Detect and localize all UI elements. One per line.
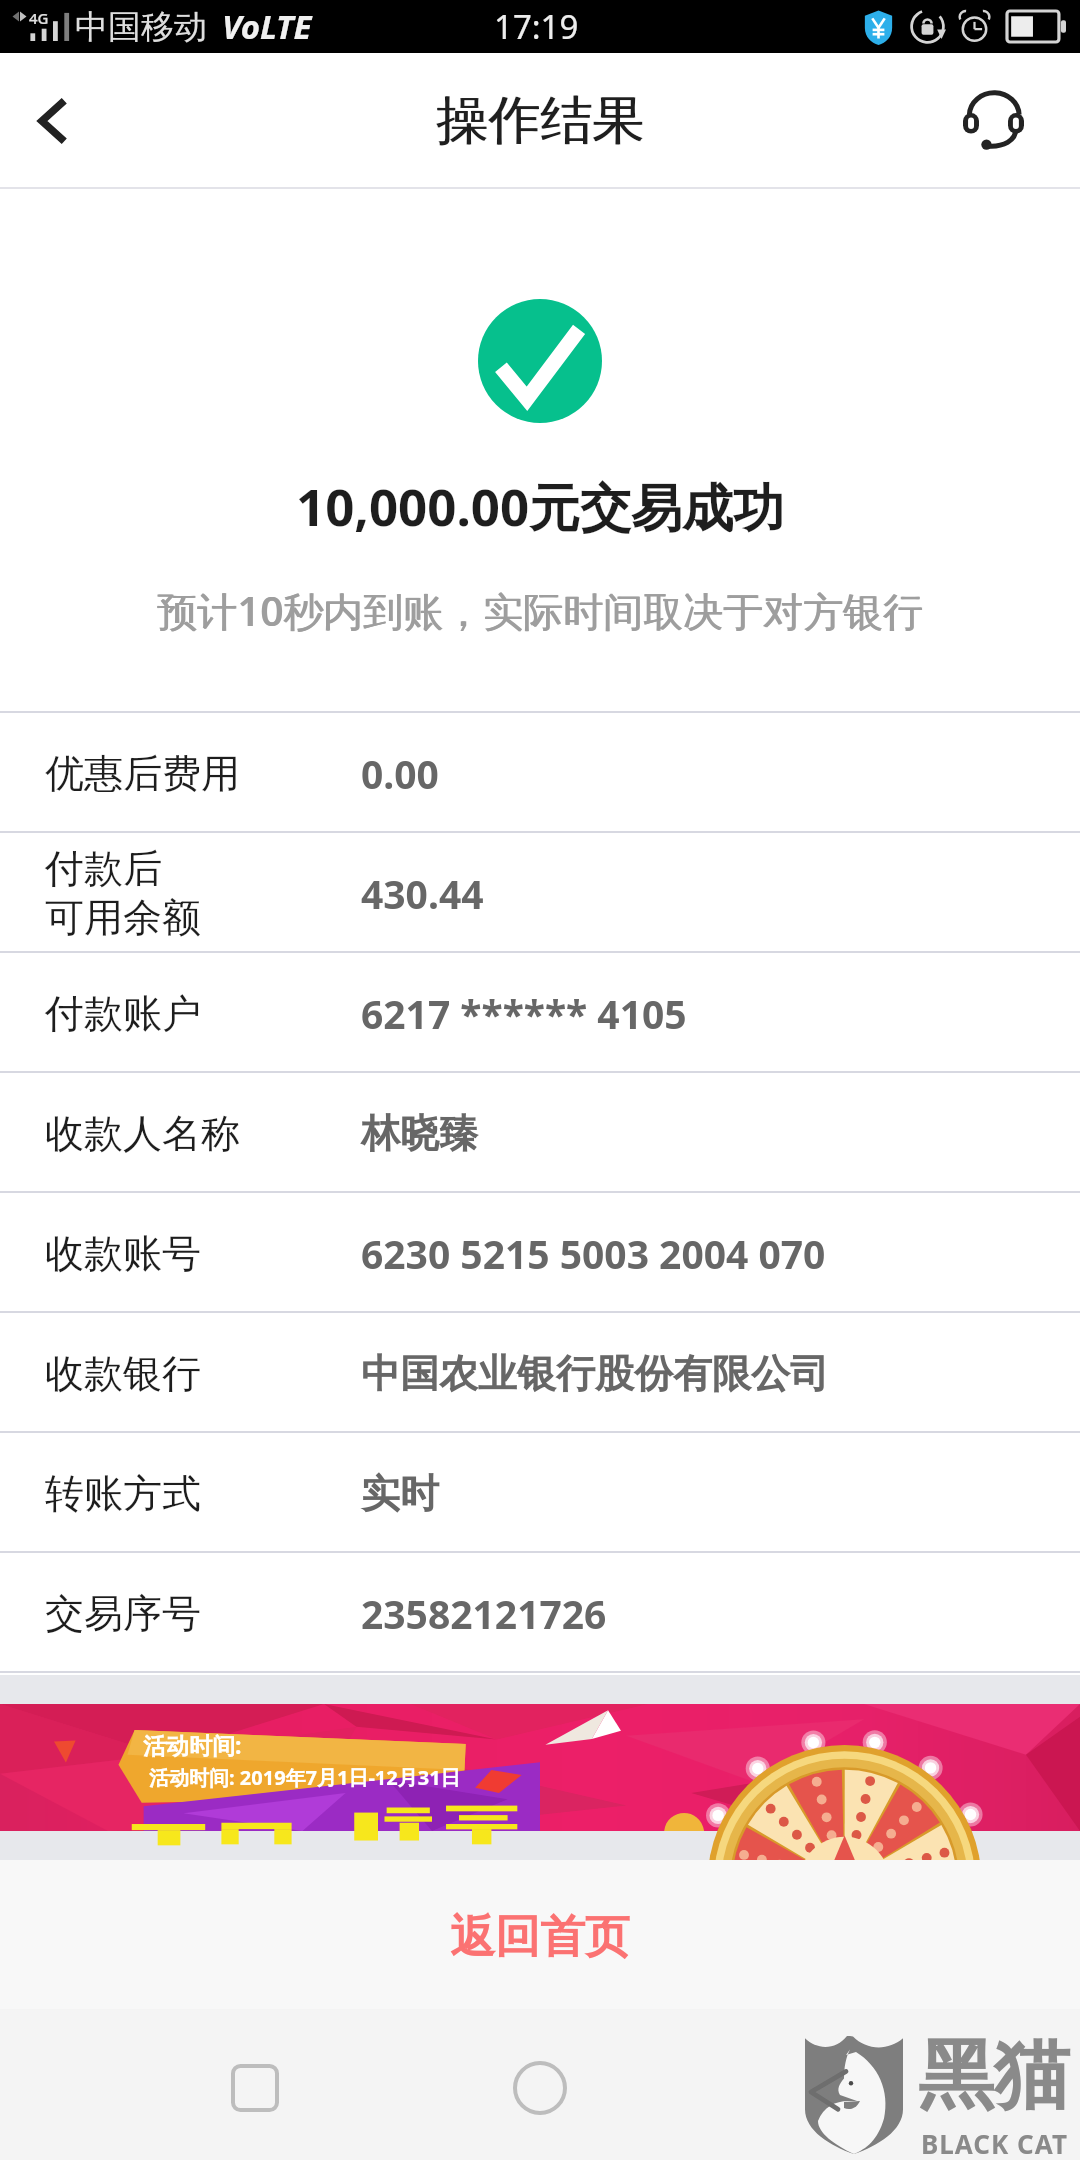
- staticText: 活动时间: 2019年7月1日-12月31日: [149, 1764, 461, 1791]
- staticText: 10,000.00元交易成功: [296, 471, 785, 541]
- button[interactable]: 优惠后费用: [0, 713, 1080, 833]
- staticText: 实时: [361, 1469, 439, 1518]
- staticText: 可用余额: [45, 893, 201, 942]
- button[interactable]: 付款账户: [0, 953, 1080, 1073]
- button[interactable]: 交易序号: [0, 1553, 1080, 1673]
- staticText: 4G: [29, 8, 49, 28]
- button[interactable]: Recents: [211, 2044, 299, 2132]
- button[interactable]: Back: [0, 53, 124, 189]
- staticText: 预计10秒内到账，实际时间取决于对方银行: [158, 583, 924, 638]
- staticText: 中国移动: [75, 6, 207, 48]
- staticText: 优惠后费用: [45, 749, 240, 798]
- button[interactable]: 收款账号: [0, 1193, 1080, 1313]
- staticText: 返回首页: [450, 1909, 630, 1966]
- staticText: 23582121726: [361, 1587, 607, 1640]
- staticText: 6230 5215 5003 2004 070: [361, 1227, 826, 1280]
- staticText: 收款人名称: [45, 1109, 240, 1158]
- staticText: 预计10秒内到账，实际时间取决于对方银行: [157, 583, 923, 638]
- staticText: 收款账号: [45, 1229, 201, 1278]
- staticText: 430.44: [361, 867, 484, 920]
- staticText: 交易序号: [45, 1589, 201, 1638]
- staticText: 付款账户: [45, 989, 201, 1038]
- staticText: 中国农业银行股份有限公司: [361, 1349, 829, 1398]
- staticText: 转账方式: [45, 1469, 201, 1518]
- staticText: 0.00: [361, 747, 439, 800]
- button[interactable]: 转账方式: [0, 1433, 1080, 1553]
- button[interactable]: Promotion banner: [0, 1704, 1080, 1831]
- staticText: 操作结果: [436, 88, 644, 154]
- staticText: 操作结果: [437, 88, 645, 154]
- staticText: VoLTE: [222, 4, 312, 49]
- button[interactable]: 收款人名称: [0, 1073, 1080, 1193]
- button[interactable]: 付款后: [0, 833, 1080, 953]
- button[interactable]: Home: [496, 2044, 584, 2132]
- staticText: 6217 ****** 4105: [361, 987, 687, 1040]
- button[interactable]: 返回首页: [0, 1860, 1080, 2009]
- staticText: 活动时间:: [143, 1729, 242, 1760]
- staticText: 收款银行: [45, 1349, 201, 1398]
- button[interactable]: Customer service: [946, 53, 1080, 189]
- button[interactable]: 收款银行: [0, 1313, 1080, 1433]
- staticText: BLACK CAT: [921, 2126, 1068, 2160]
- staticText: 17:19: [494, 4, 579, 49]
- staticText: 黑猫: [918, 2028, 1070, 2124]
- staticText: 林晓臻: [361, 1109, 478, 1158]
- staticText: 付款后: [45, 844, 162, 893]
